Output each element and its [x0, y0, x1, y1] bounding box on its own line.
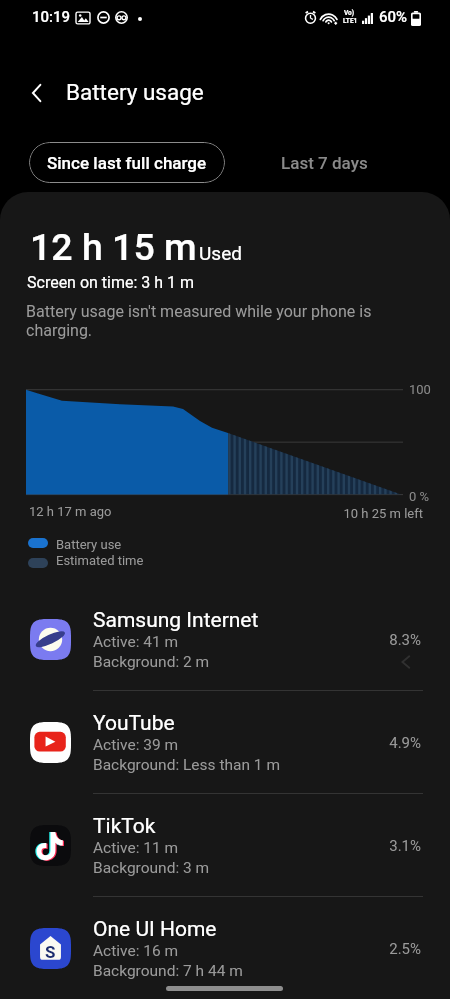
staticText: One UI Home: [93, 917, 217, 942]
staticText: Background: Less than 1 m: [93, 756, 280, 774]
button[interactable]: Back: [15, 71, 59, 115]
staticText: 100: [409, 382, 431, 397]
button[interactable]: YouTube: [0, 695, 450, 798]
staticText: 10:19: [32, 8, 71, 26]
staticText: Vo): [344, 9, 355, 17]
staticText: Active: 11 m: [93, 839, 179, 857]
staticText: S: [45, 942, 56, 962]
button[interactable]: Last 7 days: [266, 142, 382, 183]
staticText: 10 h 25 m left: [280, 506, 423, 521]
staticText: 3.1%: [340, 837, 421, 855]
staticText: Since last full charge: [47, 153, 207, 173]
staticText: LTE1: [343, 17, 358, 25]
button[interactable]: S: [0, 901, 450, 999]
staticText: 12 h 17 m ago: [29, 504, 112, 519]
staticText: 60%: [379, 8, 408, 26]
staticText: Active: 39 m: [93, 736, 179, 754]
staticText: Samsung Internet: [93, 608, 259, 633]
staticText: 4.9%: [340, 734, 421, 752]
staticText: Background: 3 m: [93, 859, 210, 877]
staticText: YouTube: [93, 711, 175, 736]
staticText: Battery usage: [66, 79, 204, 105]
button[interactable]: Since last full charge: [29, 142, 225, 183]
staticText: TikTok: [93, 814, 156, 839]
staticText: Last 7 days: [281, 153, 368, 173]
staticText: Active: 16 m: [93, 942, 179, 960]
staticText: 2.5%: [340, 940, 421, 958]
staticText: Battery use: [56, 537, 122, 552]
staticText: Estimated time: [56, 553, 144, 568]
button[interactable]: TikTok: [0, 798, 450, 901]
staticText: 8.3%: [340, 631, 421, 649]
staticText: Background: 7 h 44 m: [93, 962, 243, 980]
staticText: Active: 41 m: [93, 633, 179, 651]
staticText: Used: [199, 242, 242, 264]
button[interactable]: Samsung Internet: [0, 592, 450, 695]
staticText: Screen on time: 3 h 1 m: [27, 273, 195, 292]
staticText: 12 h 15 m: [30, 225, 197, 269]
staticText: 0 %: [409, 489, 430, 504]
staticText: Battery usage isn't measured while your …: [26, 302, 376, 340]
staticText: Background: 2 m: [93, 653, 210, 671]
